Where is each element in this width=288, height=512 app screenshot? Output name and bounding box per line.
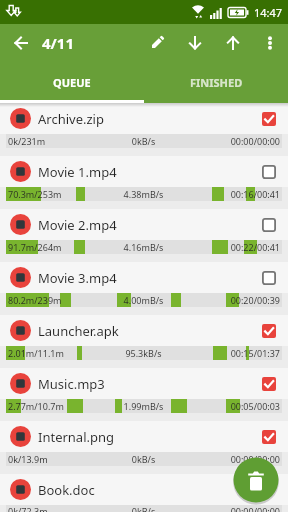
button[interactable]: Internal.png bbox=[0, 421, 288, 452]
button[interactable] bbox=[233, 457, 279, 503]
staticText: Movie 2.mp4 bbox=[38, 216, 117, 234]
staticText: 00:00/00:00 bbox=[189, 135, 280, 147]
staticText: Internal.png bbox=[38, 428, 115, 446]
button[interactable] bbox=[262, 165, 276, 179]
staticText: 1.99mB/s bbox=[98, 400, 189, 412]
staticText: 4.16mB/s bbox=[98, 241, 189, 253]
staticText: 4.38mB/s bbox=[98, 188, 189, 200]
staticText: 0kB/s bbox=[98, 505, 189, 512]
button[interactable] bbox=[262, 112, 276, 126]
staticText: 95.3kB/s bbox=[98, 347, 189, 359]
staticText: Archive.zip bbox=[38, 110, 104, 128]
staticText: Movie 3.mp4 bbox=[38, 269, 117, 287]
staticText: 00:05/00:03 bbox=[189, 400, 280, 412]
button[interactable] bbox=[262, 430, 276, 444]
staticText: 2.77m/10.7m bbox=[8, 400, 98, 412]
button[interactable]: FINISHED bbox=[144, 62, 288, 103]
staticText: 0k/231m bbox=[8, 135, 98, 147]
button[interactable] bbox=[138, 24, 176, 62]
staticText: 00:15/01:37 bbox=[189, 347, 280, 359]
button[interactable] bbox=[214, 24, 252, 62]
staticText: 0k/13.9m bbox=[8, 453, 98, 465]
button[interactable] bbox=[252, 24, 288, 62]
staticText: Music.mp3 bbox=[38, 375, 105, 393]
button[interactable] bbox=[262, 483, 276, 497]
button[interactable]: Movie 3.mp4 bbox=[0, 262, 288, 293]
staticText: 4/11 bbox=[42, 33, 74, 53]
staticText: 00:00/00:00 bbox=[189, 505, 280, 512]
staticText: Movie 1.mp4 bbox=[38, 163, 117, 181]
button[interactable]: Book.doc bbox=[0, 474, 288, 505]
button[interactable]: Music.mp3 bbox=[0, 368, 288, 399]
button[interactable] bbox=[262, 271, 276, 285]
button[interactable] bbox=[262, 377, 276, 391]
staticText: Launcher.apk bbox=[38, 322, 119, 340]
staticText: 0kB/s bbox=[98, 453, 189, 465]
staticText: 91.7m/264m bbox=[8, 241, 98, 253]
button[interactable] bbox=[176, 24, 214, 62]
staticText: 70.3m/253m bbox=[8, 188, 98, 200]
staticText: QUEUE bbox=[53, 75, 91, 90]
staticText: 4.00mB/s bbox=[98, 294, 189, 306]
button[interactable]: Launcher.apk bbox=[0, 315, 288, 346]
staticText: 00:22/00:41 bbox=[189, 241, 280, 253]
button[interactable]: Movie 2.mp4 bbox=[0, 209, 288, 240]
staticText: 00:20/00:39 bbox=[189, 294, 280, 306]
staticText: 14:47 bbox=[254, 5, 283, 20]
staticText: FINISHED bbox=[190, 75, 243, 90]
staticText: 0kB/s bbox=[98, 135, 189, 147]
button[interactable] bbox=[0, 24, 42, 62]
button[interactable]: Archive.zip bbox=[0, 103, 288, 134]
button[interactable]: QUEUE bbox=[0, 62, 144, 103]
staticText: Book.doc bbox=[38, 481, 95, 499]
staticText: 00:16/00:41 bbox=[189, 188, 280, 200]
staticText: 80.2m/239m bbox=[8, 294, 98, 306]
button[interactable] bbox=[262, 324, 276, 338]
staticText: 0k/72.3m bbox=[8, 505, 98, 512]
staticText: 00:00/00:00 bbox=[189, 453, 280, 465]
button[interactable]: Movie 1.mp4 bbox=[0, 156, 288, 187]
button[interactable] bbox=[262, 218, 276, 232]
staticText: 2.01m/11.1m bbox=[8, 347, 98, 359]
